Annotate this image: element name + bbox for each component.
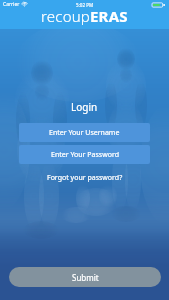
staticText: Submit [72,272,99,283]
staticText: Forgot your password? [47,173,123,183]
staticText: Enter Your Password [51,150,119,160]
staticText: Enter Your Username [49,128,120,138]
button[interactable]: Submit [9,267,161,287]
button[interactable]: Forgot your password? [41,171,129,185]
button[interactable]: Enter Your Username [19,123,150,142]
staticText: 5:02 PM [76,2,94,8]
staticText: Carrier [3,1,20,8]
button[interactable]: Enter Your Password [19,145,150,164]
staticText: recoup [41,6,90,26]
staticText: ERAS [90,6,128,26]
staticText: Login [71,100,98,114]
